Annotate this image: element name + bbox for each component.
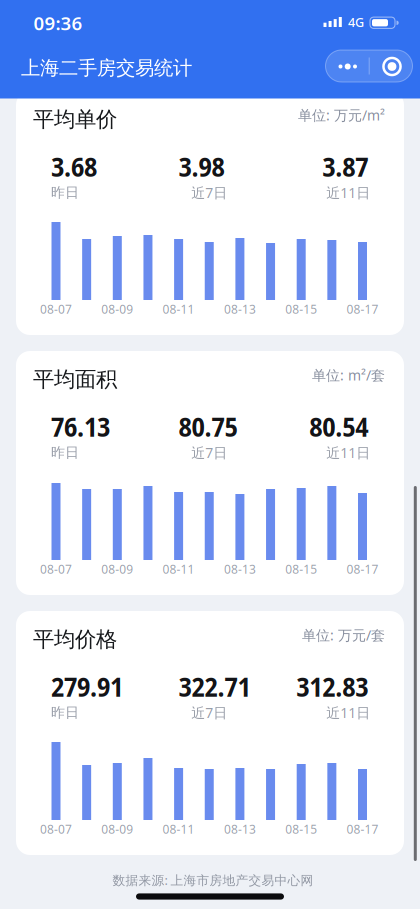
staticText: 3.68 <box>51 148 97 185</box>
staticText: 近7日 <box>191 183 227 202</box>
staticText: 08-09 <box>101 301 133 317</box>
staticText: 08-15 <box>285 821 317 837</box>
staticText: 312.83 <box>296 668 368 705</box>
staticText: 80.75 <box>178 408 237 445</box>
staticText: 08-13 <box>224 821 256 837</box>
staticText: 平均单价 <box>33 106 117 133</box>
staticText: 近7日 <box>191 703 227 722</box>
staticText: 08-11 <box>163 821 195 837</box>
staticText: 322.71 <box>178 668 250 705</box>
staticText: 3.98 <box>178 148 224 185</box>
staticText: 08-13 <box>224 301 256 317</box>
staticText: 08-11 <box>163 301 195 317</box>
staticText: 08-09 <box>101 561 133 577</box>
staticText: 80.54 <box>309 408 368 445</box>
staticText: 08-15 <box>285 301 317 317</box>
staticText: 昨日 <box>51 444 79 461</box>
staticText: 4G <box>348 13 364 31</box>
staticText: 近11日 <box>326 443 370 462</box>
staticText: 单位: 万元/m² <box>298 105 385 125</box>
staticText: 08-09 <box>101 821 133 837</box>
staticText: 单位: m²/套 <box>312 365 385 385</box>
staticText: 76.13 <box>51 408 110 445</box>
staticText: 08-17 <box>346 561 378 577</box>
staticText: 数据来源: 上海市房地产交易中心网 <box>112 871 313 889</box>
staticText: 上海二手房交易统计 <box>21 56 192 80</box>
staticText: 08-07 <box>40 821 72 837</box>
staticText: 279.91 <box>51 668 123 705</box>
staticText: 近11日 <box>326 183 370 202</box>
staticText: 08-07 <box>40 301 72 317</box>
staticText: 08-17 <box>346 821 378 837</box>
staticText: 08-13 <box>224 561 256 577</box>
staticText: 3.87 <box>322 148 368 185</box>
staticText: 昨日 <box>51 704 79 721</box>
staticText: 近7日 <box>191 443 227 462</box>
staticText: 08-07 <box>40 561 72 577</box>
staticText: 平均面积 <box>33 366 117 393</box>
staticText: 09:36 <box>33 10 82 36</box>
staticText: 昨日 <box>51 184 79 201</box>
staticText: 08-17 <box>346 301 378 317</box>
staticText: 平均价格 <box>33 626 117 653</box>
staticText: 08-11 <box>163 561 195 577</box>
staticText: 单位: 万元/套 <box>302 625 385 645</box>
staticText: 近11日 <box>326 703 370 722</box>
staticText: 08-15 <box>285 561 317 577</box>
